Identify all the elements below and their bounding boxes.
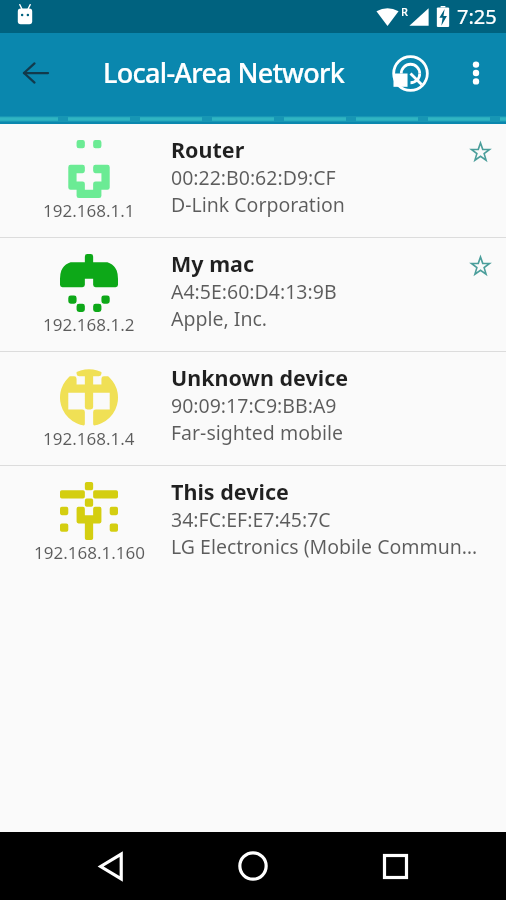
button[interactable]: 192.168.1.4: [0, 352, 506, 465]
staticText: A4:5E:60:D4:13:9B: [171, 278, 337, 305]
staticText: This device: [171, 477, 289, 506]
staticText: LG Electronics (Mobile Communic…: [171, 533, 480, 560]
staticText: Router: [171, 135, 245, 164]
button[interactable]: Back: [0, 33, 72, 113]
staticText: 192.168.1.4: [43, 427, 135, 450]
button[interactable]: Back: [80, 835, 142, 897]
staticText: 192.168.1.160: [34, 541, 145, 564]
button[interactable]: 192.168.1.1: [0, 124, 506, 237]
staticText: 00:22:B0:62:D9:CF: [171, 164, 336, 191]
staticText: Local-Area Network: [103, 54, 345, 91]
button[interactable]: 192.168.1.2: [0, 238, 506, 351]
staticText: 90:09:17:C9:BB:A9: [171, 392, 337, 419]
staticText: Far-sighted mobile: [171, 419, 343, 446]
button[interactable]: Scan network: [394, 33, 456, 113]
staticText: D-Link Corporation: [171, 191, 345, 218]
button[interactable]: 192.168.1.160: [0, 466, 506, 579]
staticText: Apple, Inc.: [171, 305, 268, 332]
staticText: 7:25: [457, 3, 497, 30]
staticText: R: [401, 4, 408, 19]
staticText: 192.168.1.1: [43, 199, 135, 222]
button[interactable]: Recent apps: [364, 835, 426, 897]
staticText: 192.168.1.2: [43, 313, 135, 336]
staticText: Unknown device: [171, 363, 349, 392]
staticText: 34:FC:EF:E7:45:7C: [171, 506, 331, 533]
button[interactable]: Favorite: [463, 134, 497, 168]
button[interactable]: Favorite: [463, 248, 497, 282]
button[interactable]: More options: [456, 33, 506, 113]
staticText: My mac: [171, 249, 255, 278]
button[interactable]: Home: [222, 835, 284, 897]
